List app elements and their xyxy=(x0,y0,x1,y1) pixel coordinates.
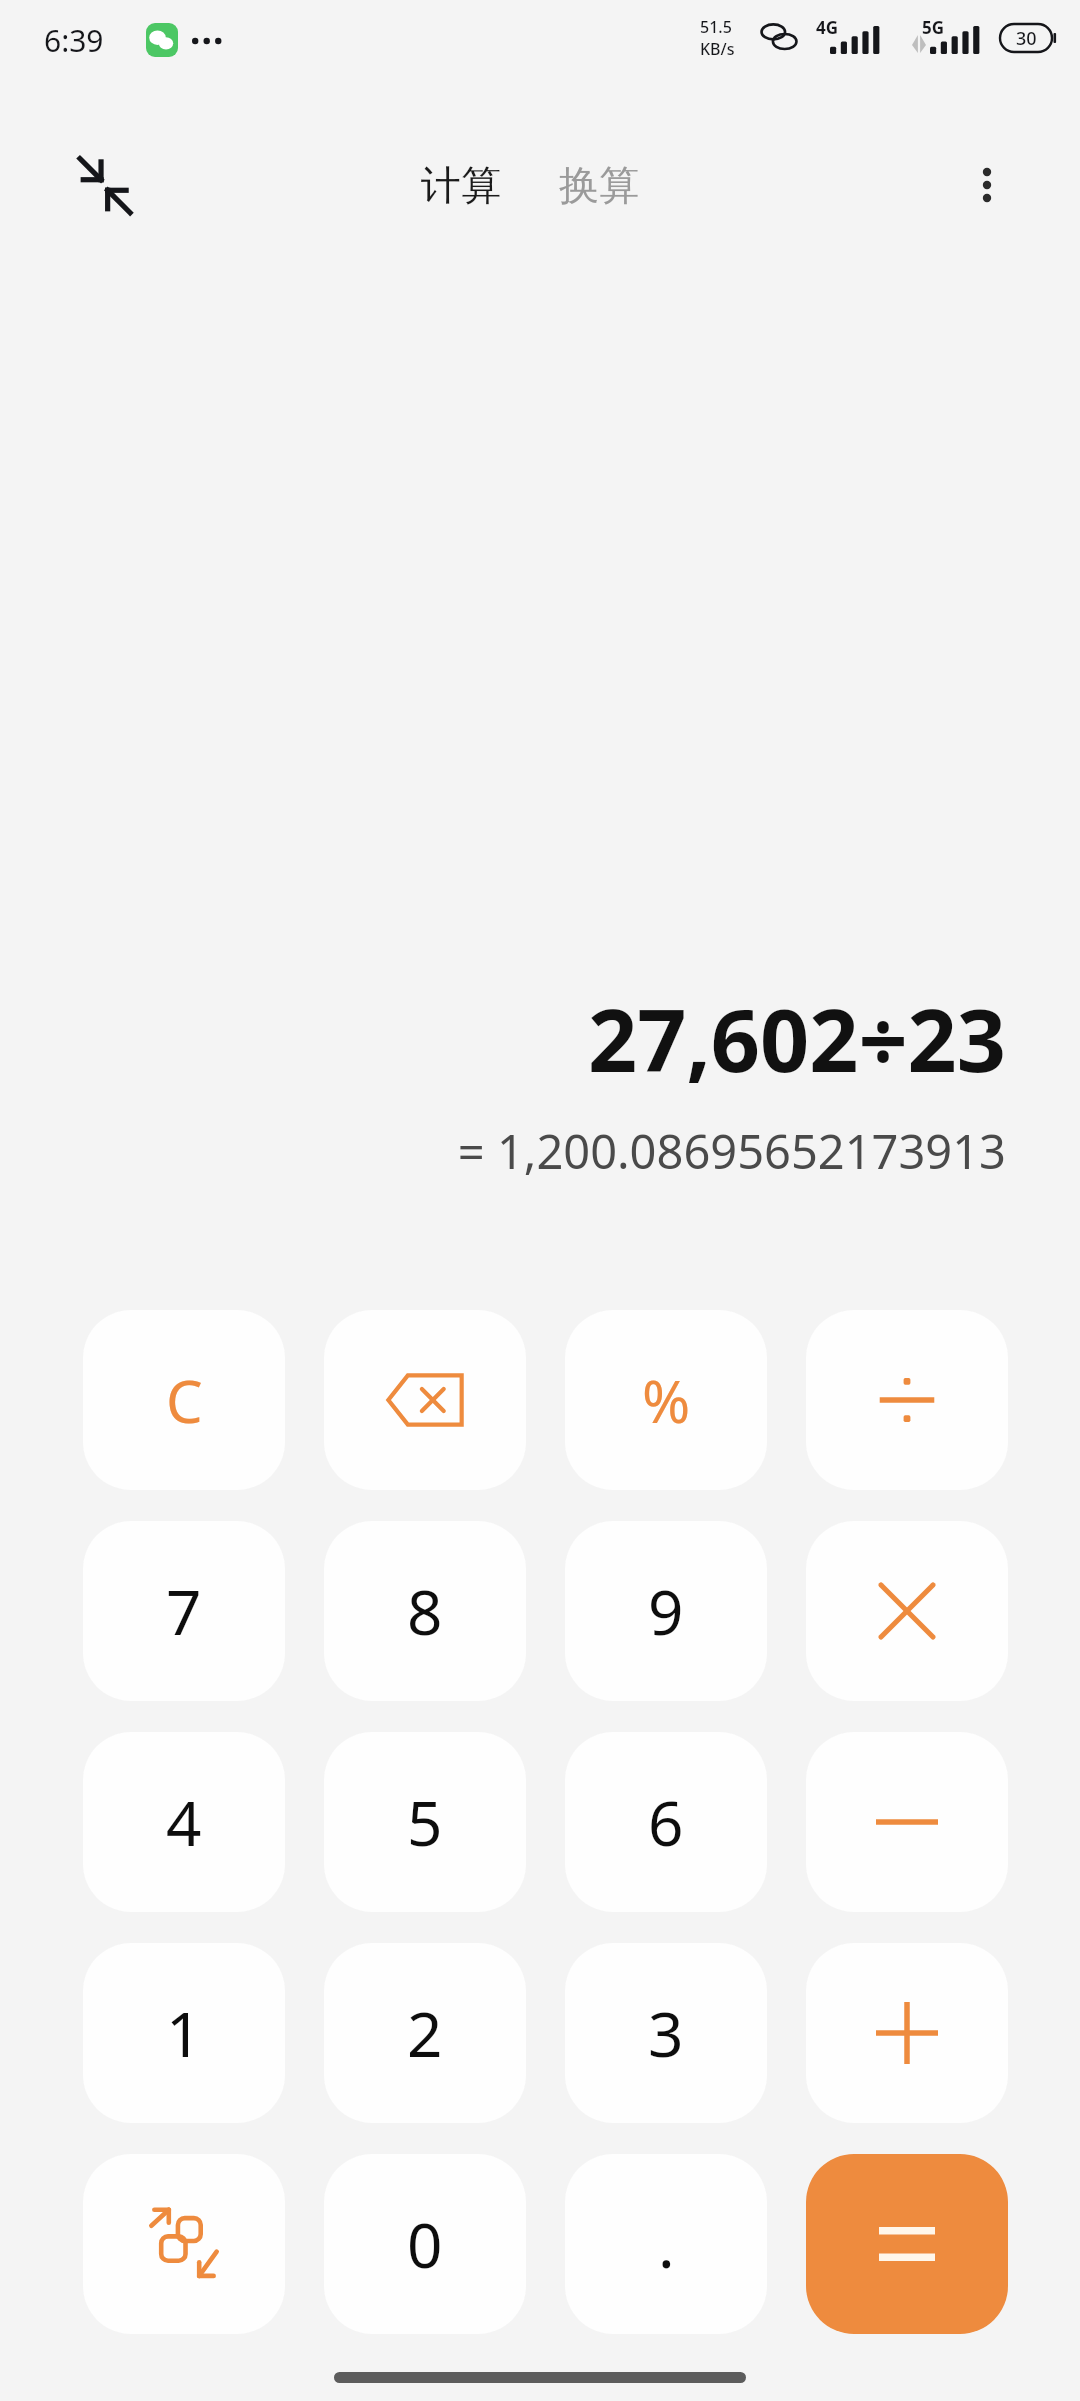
button[interactable]: Minus xyxy=(806,1732,1008,1912)
button[interactable]: Clear xyxy=(83,1310,285,1490)
button[interactable]: 7 xyxy=(83,1521,285,1701)
button[interactable]: 5 xyxy=(324,1732,526,1912)
button[interactable]: . xyxy=(565,2154,767,2334)
staticText: = 1,200.08695652173913 xyxy=(457,1119,1006,1183)
other: Clear xyxy=(166,1361,203,1440)
staticText: 51.5 xyxy=(700,16,732,38)
button[interactable]: 3 xyxy=(565,1943,767,2123)
button[interactable]: More options xyxy=(956,154,1018,216)
button[interactable]: 1 xyxy=(83,1943,285,2123)
button[interactable]: 4 xyxy=(83,1732,285,1912)
other: Plus xyxy=(876,2002,938,2064)
staticText: 1 xyxy=(166,1991,202,2075)
staticText: 3 xyxy=(648,1991,684,2075)
other: Minus xyxy=(876,1816,938,1828)
button[interactable]: 6 xyxy=(565,1732,767,1912)
staticText: 30 xyxy=(1016,26,1037,51)
staticText: 2 xyxy=(407,1991,443,2075)
staticText: . xyxy=(658,2202,675,2286)
staticText: 9 xyxy=(648,1569,684,1653)
staticText: 5G xyxy=(922,16,945,39)
staticText: 0 xyxy=(407,2202,443,2286)
other: Multiply xyxy=(881,1585,933,1637)
staticText: 5 xyxy=(407,1780,443,1864)
button[interactable]: Collapse xyxy=(72,152,138,218)
staticText: 27,602÷23 xyxy=(587,980,1006,1097)
button[interactable]: 2 xyxy=(324,1943,526,2123)
other: Divide xyxy=(876,1369,938,1431)
button[interactable]: 0 xyxy=(324,2154,526,2334)
button[interactable]: Multiply xyxy=(806,1521,1008,1701)
staticText: 计算 xyxy=(421,160,501,210)
staticText: KB/s xyxy=(700,38,735,60)
button[interactable]: Equals xyxy=(806,2154,1008,2334)
other: Unit conversion xyxy=(146,2206,222,2282)
staticText: 4G xyxy=(816,16,839,39)
button[interactable]: 换算 xyxy=(551,154,647,216)
staticText: 7 xyxy=(166,1569,202,1653)
other: Backspace xyxy=(386,1372,464,1428)
staticText: C xyxy=(166,1361,203,1440)
staticText: 6 xyxy=(648,1780,684,1864)
staticText: % xyxy=(642,1361,691,1440)
button[interactable]: Plus xyxy=(806,1943,1008,2123)
staticText: 换算 xyxy=(559,160,639,210)
button[interactable]: % xyxy=(565,1310,767,1490)
button[interactable]: 计算 xyxy=(413,154,509,216)
button[interactable]: Divide xyxy=(806,1310,1008,1490)
staticText: 6:39 xyxy=(44,20,104,61)
button[interactable]: Backspace xyxy=(324,1310,526,1490)
staticText: 4 xyxy=(166,1780,202,1864)
button[interactable]: 8 xyxy=(324,1521,526,1701)
button[interactable]: Unit conversion xyxy=(83,2154,285,2334)
button[interactable]: 9 xyxy=(565,1521,767,1701)
staticText: 8 xyxy=(407,1569,443,1653)
